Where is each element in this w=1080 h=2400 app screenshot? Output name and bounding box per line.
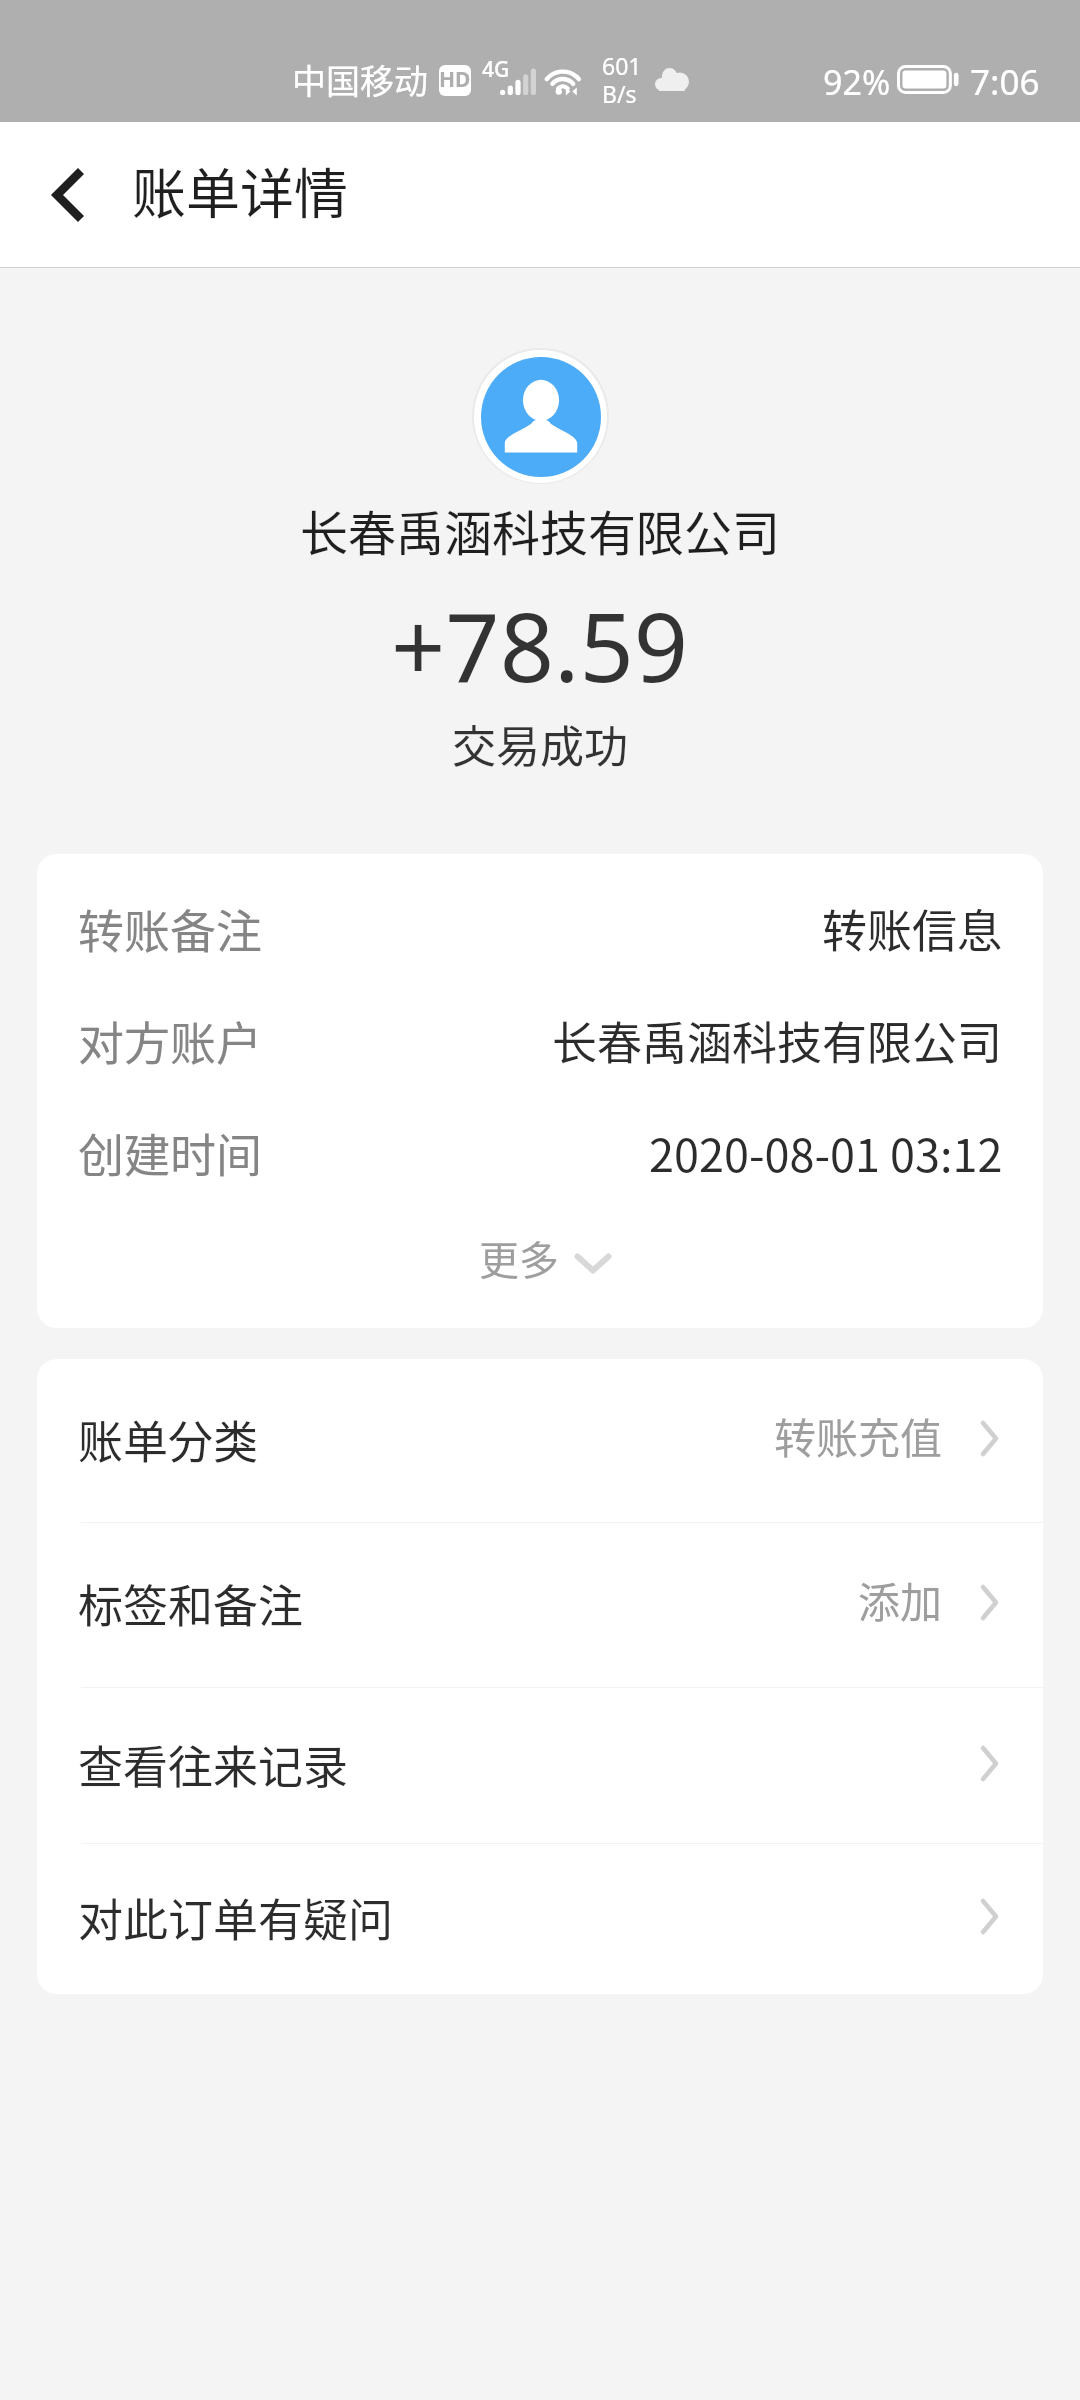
- staticText: 长春禹涵科技有限公司: [300, 495, 781, 565]
- staticText: 2020-08-01 03:12: [649, 1120, 1003, 1185]
- staticText: 交易成功: [452, 712, 628, 776]
- button[interactable]: 更多: [37, 1211, 1043, 1328]
- staticText: 转账信息: [822, 896, 1003, 961]
- staticText: 更多: [479, 1229, 559, 1287]
- staticText: 转账备注: [78, 895, 262, 962]
- button[interactable]: 查看往来记录: [37, 1688, 1043, 1844]
- staticText: 中国移动: [292, 55, 428, 104]
- staticText: 对方账户: [78, 1007, 262, 1074]
- staticText: 添加: [858, 1569, 943, 1630]
- staticText: 查看往来记录: [78, 1732, 349, 1797]
- staticText: 账单详情: [132, 151, 348, 229]
- staticText: B/s: [602, 78, 637, 109]
- staticText: 账单分类: [78, 1407, 259, 1472]
- staticText: 创建时间: [78, 1119, 262, 1186]
- staticText: 长春禹涵科技有限公司: [552, 1008, 1003, 1073]
- button[interactable]: 标签和备注: [37, 1523, 1043, 1688]
- staticText: 标签和备注: [78, 1571, 304, 1636]
- button[interactable]: 对此订单有疑问: [37, 1844, 1043, 1994]
- staticText: +78.59: [391, 580, 689, 709]
- staticText: 601: [602, 50, 642, 81]
- staticText: 转账充值: [774, 1405, 943, 1466]
- staticText: 7:06: [970, 58, 1040, 106]
- staticText: 92%: [823, 59, 891, 105]
- button[interactable]: 返回: [0, 122, 130, 268]
- staticText: 4G: [482, 55, 510, 84]
- staticText: 对此订单有疑问: [78, 1885, 394, 1950]
- button[interactable]: 账单分类: [37, 1359, 1043, 1523]
- staticText: HD: [439, 65, 471, 94]
